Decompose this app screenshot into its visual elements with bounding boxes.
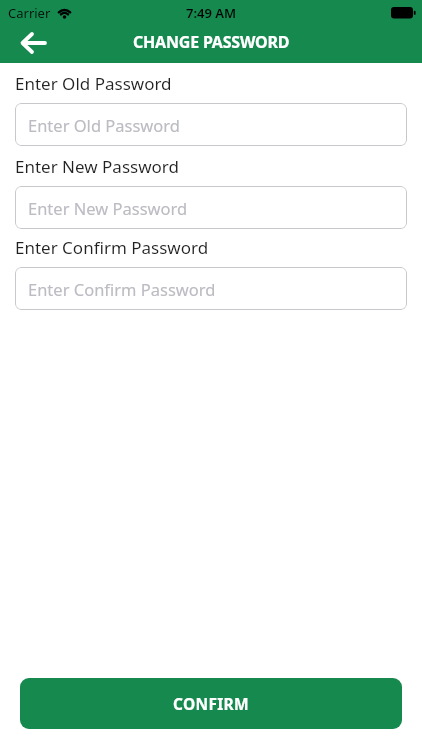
staticText: CONFIRM <box>173 693 249 714</box>
staticText: Enter Old Password <box>28 114 180 136</box>
staticText: Enter New Password <box>15 155 179 178</box>
staticText: Enter New Password <box>28 197 188 219</box>
staticText: 7:49 AM <box>186 4 237 22</box>
staticText: Enter Old Password <box>15 72 172 95</box>
staticText: CHANGE PASSWORD <box>133 31 290 53</box>
staticText: Enter Confirm Password <box>15 236 209 259</box>
staticText: Carrier <box>8 4 51 22</box>
staticText: Enter Confirm Password <box>28 278 216 300</box>
